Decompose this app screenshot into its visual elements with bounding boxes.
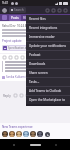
- staticText: Recent integrations: [29, 26, 58, 30]
- button[interactable]: Add people: [56, 7, 62, 13]
- button[interactable]: Recents: [52, 141, 60, 149]
- button[interactable]: Downloads: [26, 60, 70, 68]
- button[interactable]: Tasks...: [26, 78, 70, 86]
- button[interactable]: Immersive reader: [26, 33, 70, 41]
- button[interactable]: Audio call: [50, 7, 56, 13]
- button[interactable]: More: [62, 7, 68, 13]
- staticText: Sanika Kulkarni: [6, 75, 26, 79]
- staticText: Tasks...: [29, 80, 40, 84]
- staticText: Share screen: [29, 71, 48, 75]
- button[interactable]: Member 4: [30, 131, 36, 137]
- staticText: Add Teams to Outlook: [29, 89, 62, 93]
- button[interactable]: Member 2: [16, 131, 22, 137]
- button[interactable]: Posts: [11, 16, 19, 20]
- button[interactable]: Back: [10, 141, 18, 149]
- button[interactable]: Send: [55, 83, 68, 89]
- staticText: Open the Marketplace to configure: [29, 98, 67, 102]
- button[interactable]: Italic: [8, 55, 13, 60]
- button[interactable]: Save: [19, 93, 24, 98]
- staticText: Recent files: [29, 17, 46, 21]
- button[interactable]: Update your notifications: [26, 42, 70, 50]
- button[interactable]: Member 3: [23, 131, 29, 137]
- button[interactable]: Like: [13, 93, 18, 98]
- button[interactable]: Color: [26, 55, 31, 60]
- button[interactable]: Member 0: [2, 131, 8, 137]
- button[interactable]: W: [2, 45, 53, 51]
- staticText: New Teams experience: [2, 125, 33, 129]
- staticText: Send: [58, 84, 65, 88]
- button[interactable]: Recent integrations: [26, 24, 70, 32]
- staticText: Project update: [2, 39, 22, 43]
- button[interactable]: Sanika Kulkarni: [2, 75, 26, 79]
- staticText: W: [4, 47, 7, 50]
- button[interactable]: Share screen: [26, 69, 70, 77]
- button[interactable]: Cancel: [38, 83, 53, 89]
- button[interactable]: Member 5: [37, 131, 43, 137]
- staticText: Specification.docx: [8, 46, 31, 50]
- button[interactable]: Profile: [2, 8, 7, 13]
- staticText: Immersive reader: [29, 35, 55, 39]
- staticText: Posts: [11, 16, 19, 20]
- button[interactable]: Strike: [20, 55, 25, 60]
- button[interactable]: Add Teams to Outlook: [26, 87, 70, 95]
- button[interactable]: Member 1: [9, 131, 15, 137]
- staticText: Search: [14, 8, 24, 12]
- button[interactable]: Home: [28, 141, 42, 149]
- button[interactable]: Search: [11, 8, 24, 12]
- button[interactable]: More members: [45, 132, 50, 137]
- staticText: 9:41: [2, 1, 9, 5]
- staticText: Rahul Dev 10:24 AM: [2, 24, 30, 28]
- button[interactable]: Reply: [3, 94, 11, 98]
- button[interactable]: Team icon: [2, 15, 7, 20]
- button[interactable]: Bold: [2, 55, 7, 60]
- staticText: +: [47, 133, 49, 137]
- staticText: Update your notifications: [29, 44, 66, 48]
- button[interactable]: Share: [25, 93, 30, 98]
- button[interactable]: Video call: [44, 7, 50, 13]
- button[interactable]: Open the Marketplace to configure: [26, 96, 70, 104]
- button[interactable]: Podcast: [26, 51, 70, 59]
- staticText: Cancel: [41, 84, 50, 88]
- staticText: Downloads: [29, 62, 46, 66]
- staticText: Files: [23, 16, 30, 20]
- button[interactable]: Underline: [14, 55, 19, 60]
- staticText: Podcast: [29, 53, 41, 57]
- button[interactable]: Recent files: [26, 15, 70, 23]
